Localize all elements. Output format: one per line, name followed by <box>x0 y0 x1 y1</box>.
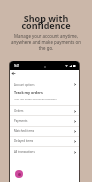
button[interactable]: Orders <box>10 106 79 116</box>
staticText: Manage your account anytime, anywhere an… <box>9 33 83 51</box>
staticText: Your live orders and recent transfers <box>14 97 57 100</box>
staticText: Track my orders <box>14 90 43 95</box>
staticText: 9:41 <box>14 64 20 68</box>
staticText: Payments <box>14 119 74 123</box>
button[interactable]: Delayed items <box>10 136 79 146</box>
staticText: Shop with confidence <box>0 12 92 32</box>
button[interactable]: Matched items <box>10 126 79 136</box>
staticText: Delayed items <box>14 139 74 143</box>
button[interactable]: Account options <box>10 79 79 90</box>
button[interactable]: All transactions <box>10 147 79 157</box>
button[interactable]: Profile <box>15 170 23 178</box>
button[interactable]: Track my orders <box>10 88 79 105</box>
staticText: Orders <box>14 109 74 113</box>
staticText: Account options <box>14 83 74 87</box>
staticText: All transactions <box>14 150 74 154</box>
button[interactable]: Back <box>10 70 17 77</box>
button[interactable]: Payments <box>10 116 79 126</box>
staticText: Matched items <box>14 129 74 133</box>
